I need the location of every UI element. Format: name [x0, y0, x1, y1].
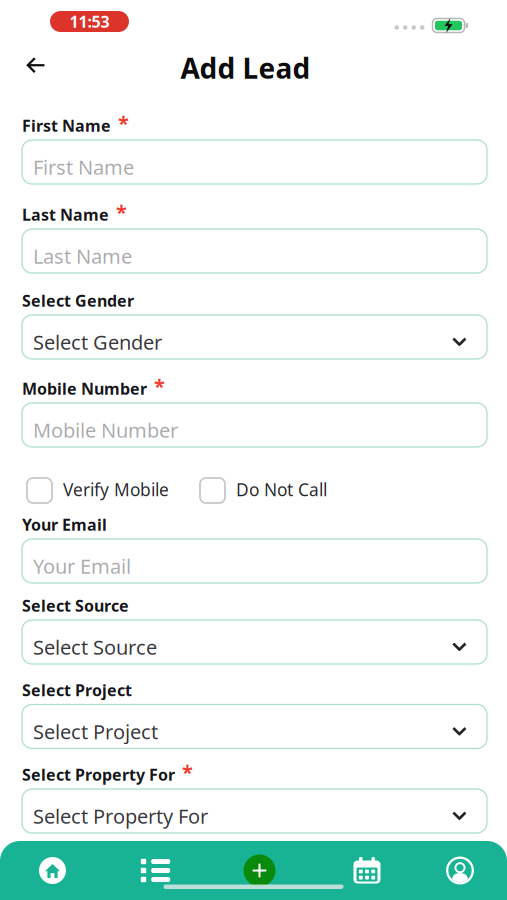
- staticText: Select Source: [22, 595, 129, 616]
- button[interactable]: Select Property For: [22, 789, 487, 833]
- staticText: Do Not Call: [236, 478, 327, 501]
- button[interactable]: Select Project: [22, 704, 487, 748]
- button[interactable]: Add: [206, 841, 313, 900]
- staticText: First Name: [33, 154, 134, 180]
- staticText: Verify Mobile: [63, 478, 169, 501]
- staticText: Your Email: [33, 553, 131, 579]
- button[interactable]: Calendar: [313, 841, 421, 900]
- staticText: Mobile Number: [22, 378, 147, 399]
- button[interactable]: Profile: [421, 841, 499, 900]
- staticText: *: [116, 199, 127, 225]
- button[interactable]: Home: [0, 841, 105, 900]
- button[interactable]: Verify Mobile: [27, 477, 169, 504]
- staticText: Mobile Number: [33, 417, 178, 443]
- button[interactable]: Select Gender: [22, 315, 487, 359]
- staticText: Select Project: [33, 718, 158, 745]
- button[interactable]: Select Source: [22, 620, 487, 664]
- staticText: Select Gender: [22, 290, 134, 311]
- staticText: 11:53: [69, 11, 109, 32]
- staticText: Add Lead: [180, 49, 310, 87]
- button[interactable]: Do Not Call: [200, 477, 327, 504]
- staticText: Last Name: [22, 204, 109, 225]
- staticText: Select Source: [33, 634, 157, 660]
- staticText: Your Email: [22, 514, 107, 535]
- staticText: Select Property For: [22, 764, 175, 785]
- staticText: First Name: [22, 115, 111, 136]
- staticText: *: [182, 759, 193, 785]
- staticText: Last Name: [33, 243, 132, 269]
- staticText: Select Gender: [33, 329, 162, 355]
- staticText: Select Project: [22, 679, 132, 701]
- staticText: *: [154, 373, 165, 399]
- staticText: Select Property For: [33, 803, 208, 829]
- button[interactable]: Leads: [105, 841, 206, 900]
- button[interactable]: Back: [0, 46, 59, 84]
- staticText: *: [118, 110, 129, 136]
